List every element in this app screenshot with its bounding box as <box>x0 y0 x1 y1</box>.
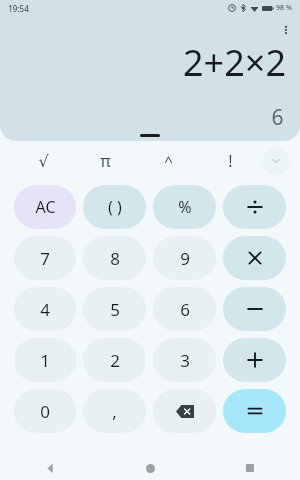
button[interactable]: 4 <box>14 287 76 331</box>
button[interactable]: Collapse <box>262 147 290 175</box>
staticText: % <box>178 196 192 218</box>
staticText: 19:54 <box>8 3 29 14</box>
button[interactable]: 2 <box>83 338 146 382</box>
button[interactable]: Minus <box>223 287 286 331</box>
staticText: 2 <box>110 349 120 372</box>
staticText: 6 <box>271 103 284 132</box>
button[interactable]: π <box>83 141 127 181</box>
button[interactable]: Back <box>0 456 100 480</box>
button[interactable]: ! <box>208 141 252 181</box>
staticText: 3 <box>180 349 190 372</box>
staticText: 2+2×2 <box>183 38 286 87</box>
staticText: 98 % <box>276 3 292 13</box>
staticText: ^ <box>164 151 173 171</box>
button[interactable]: ( ) <box>83 185 146 229</box>
button[interactable]: Recents <box>200 456 300 480</box>
button[interactable]: Divide <box>223 185 286 229</box>
button[interactable]: ^ <box>146 141 190 181</box>
staticText: 6 <box>180 298 190 321</box>
staticText: AC <box>35 196 56 218</box>
button[interactable]: 0 <box>14 389 76 433</box>
staticText: 5 <box>110 298 120 321</box>
staticText: 4 <box>40 298 50 321</box>
staticText: 0 <box>40 400 50 423</box>
button[interactable]: 9 <box>153 236 216 280</box>
button[interactable]: 3 <box>153 338 216 382</box>
button[interactable]: , <box>83 389 146 433</box>
button[interactable]: More options <box>274 18 298 42</box>
button[interactable]: √ <box>21 141 65 181</box>
staticText: π <box>100 150 111 172</box>
button[interactable]: Multiply <box>223 236 286 280</box>
button[interactable]: 7 <box>14 236 76 280</box>
button[interactable]: 1 <box>14 338 76 382</box>
staticText: √ <box>38 152 49 171</box>
staticText: , <box>112 400 117 423</box>
button[interactable]: Plus <box>223 338 286 382</box>
button[interactable]: Home <box>100 456 200 480</box>
button[interactable]: AC <box>14 185 76 229</box>
button[interactable]: 8 <box>83 236 146 280</box>
staticText: 9 <box>180 247 190 270</box>
staticText: ( ) <box>108 196 122 218</box>
staticText: 1 <box>40 349 50 372</box>
button[interactable]: Backspace <box>153 389 216 433</box>
button[interactable]: % <box>153 185 216 229</box>
staticText: 7 <box>40 247 50 270</box>
button[interactable]: Equals <box>223 389 286 433</box>
staticText: 8 <box>110 247 120 270</box>
button[interactable]: 6 <box>153 287 216 331</box>
staticText: ! <box>228 150 233 172</box>
button[interactable]: 5 <box>83 287 146 331</box>
